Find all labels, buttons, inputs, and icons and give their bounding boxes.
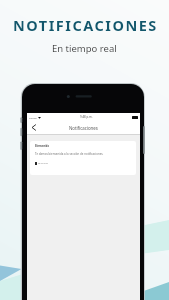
staticText: Bienvenido xyxy=(35,144,49,147)
staticText: 28-02-2022 xyxy=(38,162,48,165)
staticText: Carrier xyxy=(29,116,37,119)
staticText: Notificaciones xyxy=(69,125,98,131)
staticText: En tiempo real xyxy=(52,42,117,55)
staticText: Te damos bienvenida a la sección de noti… xyxy=(35,152,104,156)
staticText: NOTIFICACIONES xyxy=(13,15,158,35)
staticText: 9:48 p.m. xyxy=(80,115,93,119)
button[interactable]: Back xyxy=(29,123,38,132)
button[interactable]: Bienvenido xyxy=(30,141,136,175)
